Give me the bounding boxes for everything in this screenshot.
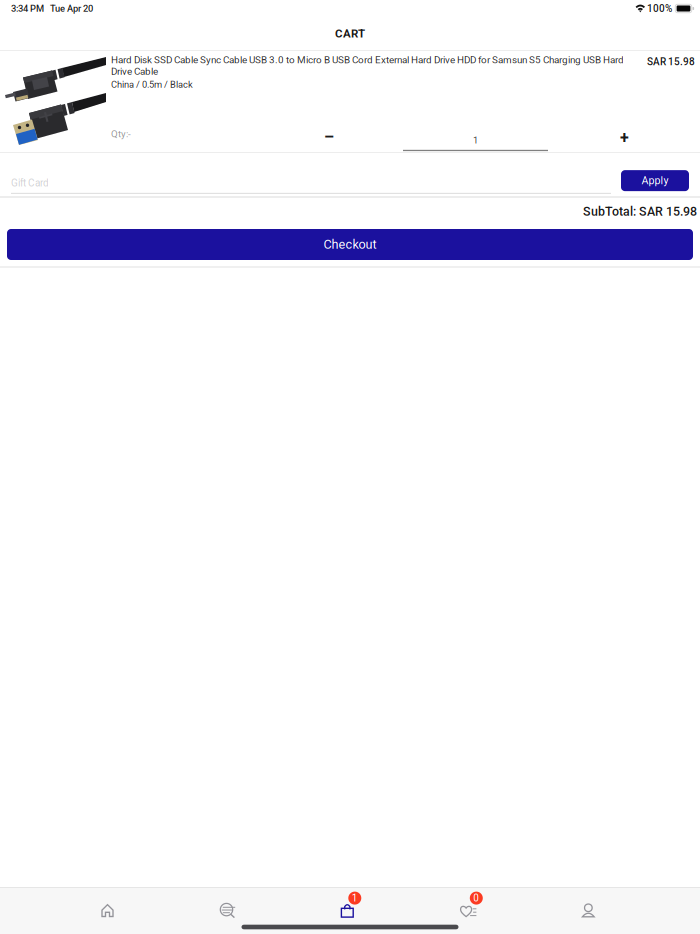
button[interactable]: Apply [621, 170, 689, 191]
staticText: 0 [473, 892, 479, 904]
staticText: CART [335, 27, 365, 40]
staticText: Gift Card [11, 177, 49, 189]
staticText: 1 [473, 135, 478, 146]
button[interactable]: Account [528, 895, 648, 925]
staticText: China / 0.5m / Black [111, 79, 193, 90]
staticText: Hard Disk SSD Cable Sync Cable USB 3.0 t… [111, 54, 624, 77]
staticText: – [324, 128, 334, 146]
staticText: + [620, 129, 629, 147]
button[interactable]: Search [168, 895, 288, 925]
staticText: 3:34 PM Tue Apr 20 [11, 3, 93, 14]
staticText: Checkout [323, 237, 376, 252]
staticText: 1 [352, 892, 358, 904]
button[interactable]: Wishlist [408, 895, 528, 925]
staticText: SubTotal: SAR 15.98 [583, 204, 697, 219]
staticText: SAR 15.98 [647, 56, 695, 68]
staticText: 100% [645, 3, 674, 14]
staticText: Apply [641, 174, 668, 187]
button[interactable]: Home [47, 895, 168, 925]
staticText: Qty:- [111, 128, 131, 140]
button[interactable]: Cart [288, 895, 408, 925]
button[interactable]: Checkout [7, 229, 693, 260]
